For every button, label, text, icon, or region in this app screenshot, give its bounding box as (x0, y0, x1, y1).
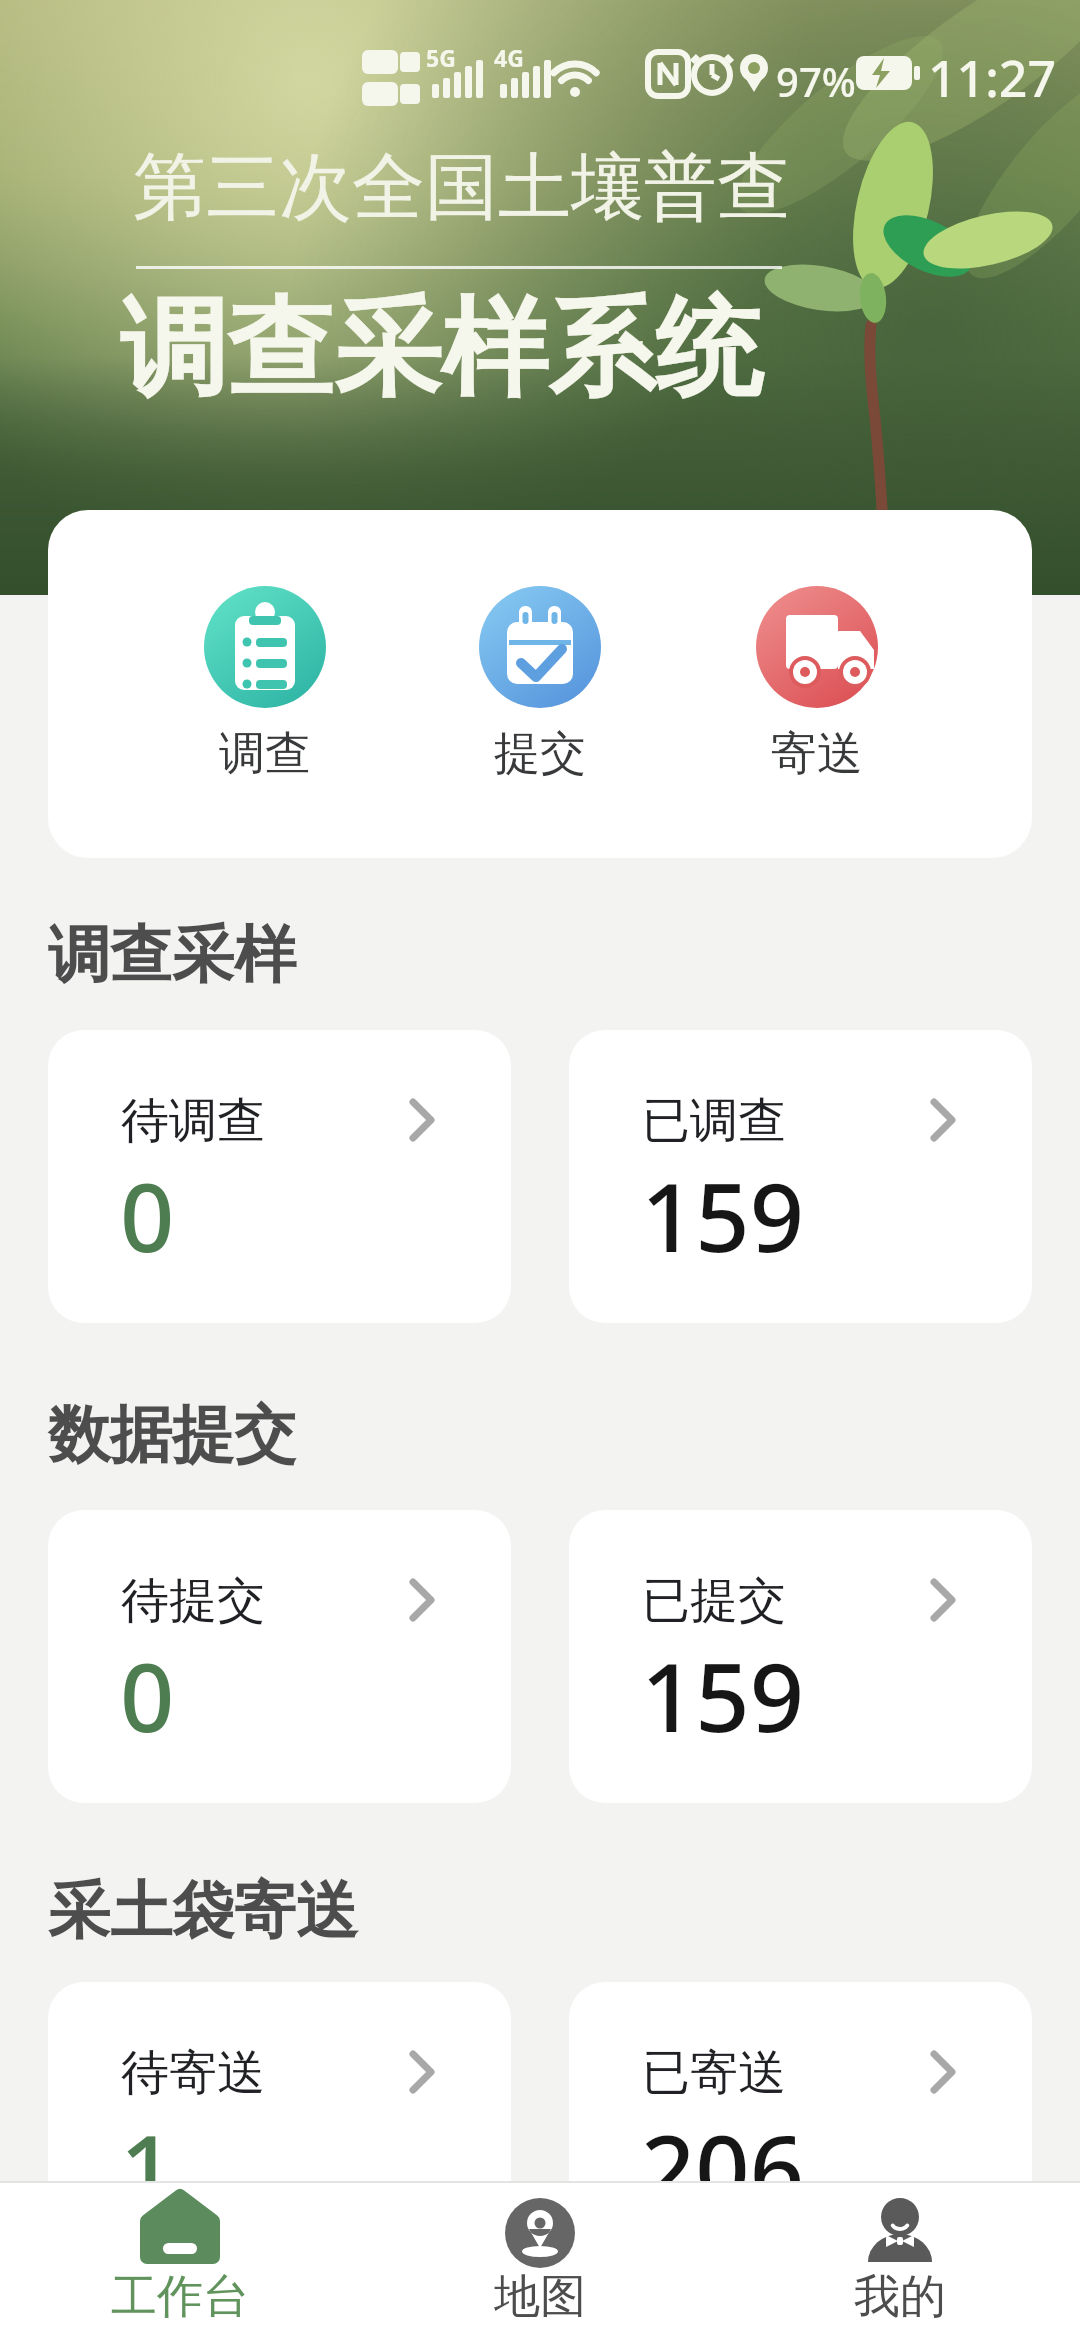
staticText: 206 (641, 2102, 805, 2231)
staticText: 待调查 (121, 1091, 265, 1151)
staticText: 我的 (854, 2268, 946, 2326)
staticText: 159 (641, 1150, 805, 1279)
staticText: 待寄送 (121, 2043, 265, 2103)
staticText: 1 (120, 2102, 175, 2231)
staticText: 已提交 (642, 1571, 786, 1631)
staticText: 0 (120, 1150, 175, 1279)
staticText: 地图 (494, 2268, 586, 2326)
staticText: 工作台 (111, 2268, 249, 2326)
staticText: 159 (641, 1630, 805, 1759)
staticText: 4G (494, 42, 524, 73)
staticText: 第三次全国土壤普查 (133, 142, 790, 234)
staticText: 0 (120, 1630, 175, 1759)
staticText: 待提交 (121, 1571, 265, 1631)
staticText: 11:27 (928, 44, 1056, 112)
staticText: 数据提交 (48, 1396, 296, 1474)
staticText: 调查 (219, 725, 311, 783)
staticText: 已寄送 (642, 2043, 786, 2103)
staticText: 调查采样系统 (120, 282, 762, 417)
staticText: 97% (776, 54, 856, 108)
staticText: 调查采样 (48, 916, 296, 994)
staticText: 提交 (494, 725, 586, 783)
staticText: 5G (426, 42, 456, 73)
staticText: 已调查 (642, 1091, 786, 1151)
staticText: 采土袋寄送 (48, 1872, 358, 1950)
staticText: 寄送 (771, 725, 863, 783)
